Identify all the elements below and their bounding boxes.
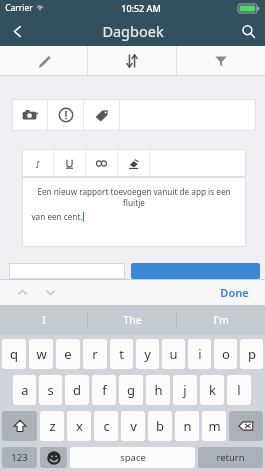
staticText: s	[47, 381, 54, 399]
button[interactable]: 123	[2, 447, 37, 468]
staticText: w	[36, 345, 47, 363]
button[interactable]: Clear formatting	[118, 149, 149, 177]
staticText: x	[76, 417, 83, 435]
staticText: I	[36, 158, 39, 170]
staticText: Een nieuw rapport toevoegen vanuit de ap…	[31, 186, 237, 208]
staticText: return	[216, 451, 245, 464]
button[interactable]: a	[13, 375, 36, 405]
button[interactable]: k	[200, 375, 224, 405]
button[interactable]: x	[67, 411, 91, 441]
button[interactable]: Edit	[0, 46, 87, 76]
button[interactable]: Search	[231, 16, 265, 46]
staticText: I	[42, 313, 46, 327]
button[interactable]: z	[40, 411, 64, 441]
button[interactable]: I'm	[177, 305, 265, 335]
staticText: The	[123, 313, 142, 327]
staticText: van een cent.	[31, 211, 83, 222]
staticText: i	[198, 345, 202, 363]
staticText: a	[21, 381, 29, 399]
staticText: j	[183, 381, 187, 399]
button[interactable]: s	[39, 375, 62, 405]
staticText: p	[248, 345, 256, 363]
button[interactable]: j	[173, 375, 197, 405]
staticText: b	[156, 417, 164, 435]
button[interactable]: d	[65, 375, 89, 405]
staticText: Done	[220, 285, 249, 300]
button[interactable]: t	[110, 339, 133, 369]
staticText: Dagboek	[102, 21, 164, 41]
staticText: q	[10, 345, 18, 363]
button[interactable]: c	[94, 411, 118, 441]
staticText: r	[92, 345, 98, 363]
button[interactable]: r	[83, 339, 107, 369]
button[interactable]: m	[202, 411, 226, 441]
button[interactable]: l	[227, 375, 251, 405]
staticText: c	[103, 417, 110, 435]
button[interactable]: p	[240, 339, 263, 369]
button[interactable]	[9, 263, 125, 279]
button[interactable]: Emoji	[40, 447, 67, 468]
button[interactable]: I	[0, 305, 87, 335]
button[interactable]: Underline	[54, 149, 85, 177]
staticText: f	[102, 381, 107, 399]
staticText: v	[130, 417, 137, 435]
button[interactable]: Done	[216, 282, 253, 303]
staticText: 10:52 AM	[121, 2, 161, 14]
staticText: n	[183, 417, 192, 435]
button[interactable]: Next field	[40, 282, 60, 302]
button[interactable]: n	[175, 411, 199, 441]
button[interactable]: i	[188, 339, 211, 369]
staticText: t	[119, 345, 124, 363]
staticText: o	[222, 345, 230, 363]
staticText: g	[127, 381, 135, 399]
button[interactable]: v	[121, 411, 145, 441]
staticText: space	[120, 451, 146, 464]
staticText: h	[154, 381, 163, 399]
button[interactable]: Alert	[48, 99, 83, 131]
staticText: 123	[11, 451, 28, 464]
staticText: y	[144, 345, 151, 363]
button[interactable]: Camera	[12, 99, 47, 131]
button[interactable]: return	[198, 447, 263, 468]
button[interactable]: Italic	[22, 149, 53, 177]
button[interactable]: f	[92, 375, 116, 405]
button[interactable]: Previous field	[12, 282, 32, 302]
staticText: Carrier	[5, 2, 33, 14]
button[interactable]: Een nieuw rapport toevoegen vanuit de ap…	[22, 177, 246, 247]
staticText: u	[169, 345, 178, 363]
staticText: d	[73, 381, 81, 399]
staticText: l	[237, 381, 241, 399]
button[interactable]: b	[148, 411, 172, 441]
button[interactable]: q	[2, 339, 26, 369]
button[interactable]: Filter	[177, 46, 265, 76]
button[interactable]: Link	[86, 149, 117, 177]
button[interactable]: o	[214, 339, 237, 369]
button[interactable]: Tag	[84, 99, 119, 131]
button[interactable]: u	[162, 339, 185, 369]
staticText: z	[49, 417, 56, 435]
button[interactable]: e	[56, 339, 80, 369]
button[interactable]: g	[119, 375, 143, 405]
staticText: I'm	[213, 313, 229, 327]
staticText: m	[208, 417, 221, 435]
button[interactable]: Shift	[2, 411, 37, 441]
button[interactable]: space	[70, 447, 195, 468]
button[interactable]: h	[146, 375, 170, 405]
staticText: k	[209, 381, 216, 399]
button[interactable]: Backspace	[229, 411, 263, 441]
button[interactable]: Back	[0, 16, 34, 46]
button[interactable]: Opslaan	[131, 263, 260, 279]
button[interactable]: w	[29, 339, 53, 369]
button[interactable]: The	[88, 305, 176, 335]
staticText: e	[64, 345, 72, 363]
button[interactable]: Sort	[88, 46, 176, 76]
button[interactable]: y	[136, 339, 159, 369]
